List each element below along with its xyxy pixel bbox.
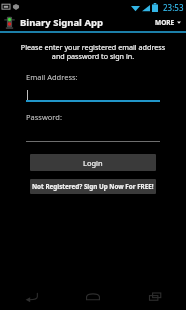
staticText: Email Address: [26,72,78,82]
button[interactable]: MORE [153,16,183,29]
staticText: Please enter your registered email addre… [16,42,170,61]
button[interactable] [26,88,160,102]
button[interactable]: Back [0,282,62,310]
button[interactable]: Home [62,282,124,310]
staticText: 23:53 [163,2,184,13]
button[interactable]: Not Registered? Sign Up Now For FREE! [30,179,156,194]
staticText: MORE [155,18,175,27]
staticText: Login [83,158,103,168]
staticText: Binary Signal App [20,16,103,29]
button[interactable]: Recent apps [124,282,186,310]
button[interactable] [26,128,160,142]
staticText: Password: [26,112,62,122]
button[interactable]: Login [30,154,156,171]
staticText: Not Registered? Sign Up Now For FREE! [32,182,154,191]
